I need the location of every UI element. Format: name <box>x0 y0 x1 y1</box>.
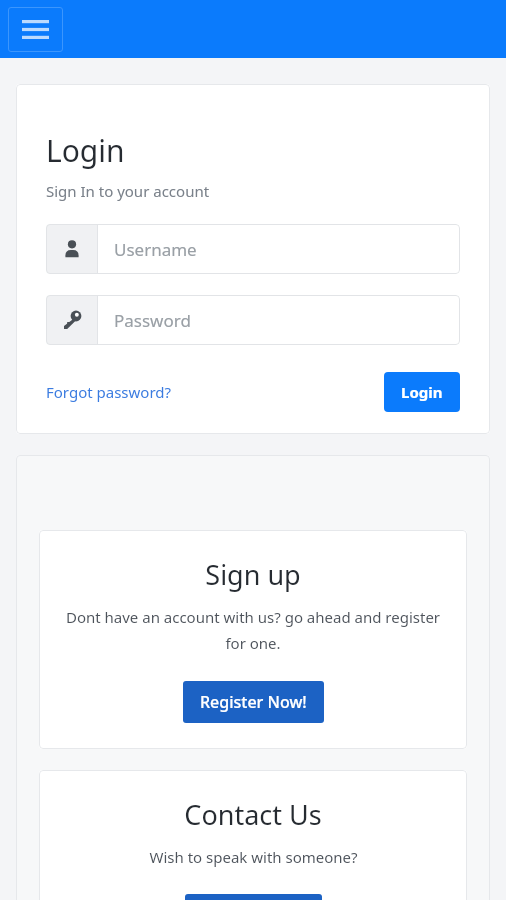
staticText: Login <box>46 130 125 171</box>
staticText: Username <box>114 238 197 261</box>
staticText: Login <box>401 382 443 402</box>
button[interactable]: Register Now! <box>183 681 324 723</box>
button[interactable]: Open navigation menu <box>8 7 63 52</box>
staticText: Sign up <box>205 556 301 593</box>
staticText: Password <box>114 309 191 332</box>
staticText: Contact Us <box>184 796 322 833</box>
staticText: Dont have an account with us? go ahead a… <box>59 607 447 654</box>
button[interactable]: Username <box>46 224 460 274</box>
staticText: Forgot password? <box>46 382 172 402</box>
button[interactable]: Contact Now! <box>185 894 322 900</box>
button[interactable]: Password <box>46 295 460 345</box>
button[interactable]: Forgot password? <box>46 379 172 405</box>
staticText: Register Now! <box>200 691 307 713</box>
button[interactable]: Login <box>384 372 460 412</box>
staticText: Wish to speak with someone? <box>149 847 358 867</box>
staticText: Sign In to your account <box>46 181 210 201</box>
